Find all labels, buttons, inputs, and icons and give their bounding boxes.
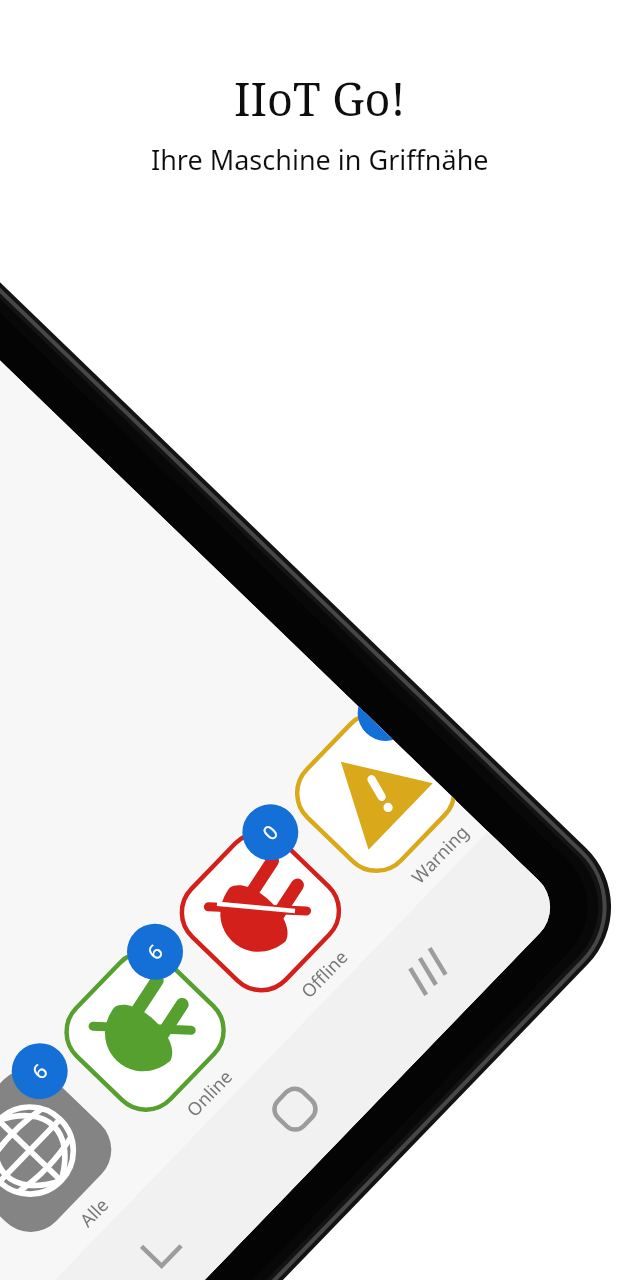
button[interactable]: IIoT Go – Ihre Maschine in Griffnähe [0, 0, 640, 1280]
